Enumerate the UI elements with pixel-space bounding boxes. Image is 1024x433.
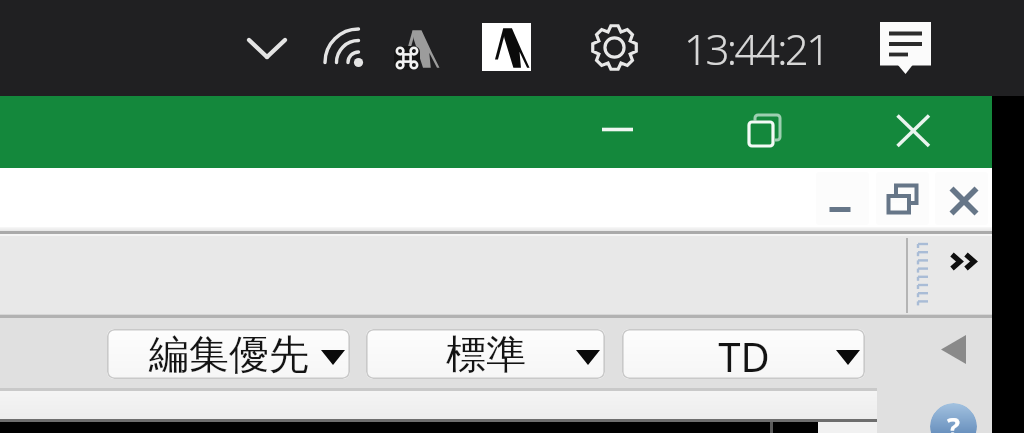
staticText: TD bbox=[718, 329, 770, 379]
button[interactable]: Application bbox=[392, 26, 442, 72]
button[interactable]: Toolbar options bbox=[908, 238, 992, 313]
button[interactable]: Notifications bbox=[880, 22, 931, 74]
staticText: ? bbox=[947, 408, 960, 433]
button[interactable]: Restore bbox=[734, 104, 796, 160]
button[interactable]: 標準 bbox=[366, 329, 605, 379]
button[interactable]: Editor bbox=[482, 23, 531, 71]
button[interactable]: Restore document bbox=[876, 172, 929, 225]
button[interactable]: Show hidden icons bbox=[247, 38, 287, 59]
button[interactable]: Minimize bbox=[578, 104, 658, 160]
button[interactable]: Help bbox=[930, 403, 977, 433]
staticText: 編集優先 bbox=[149, 329, 309, 379]
button[interactable]: Settings bbox=[590, 23, 639, 72]
button[interactable]: 編集優先 bbox=[107, 329, 350, 379]
button[interactable]: Previous bbox=[934, 331, 972, 365]
staticText: 13:44:21 bbox=[684, 20, 828, 68]
button[interactable]: Close bbox=[884, 104, 942, 160]
button[interactable]: TD bbox=[622, 329, 865, 379]
button[interactable]: Close document bbox=[935, 172, 988, 225]
staticText: 標準 bbox=[446, 329, 526, 379]
button[interactable]: Network bbox=[325, 30, 364, 68]
button[interactable]: Minimize document bbox=[816, 172, 869, 225]
